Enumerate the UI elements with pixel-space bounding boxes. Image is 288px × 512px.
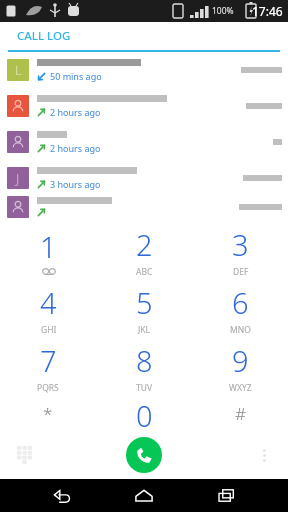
staticText: L [15,61,22,79]
staticText: 2 [136,225,153,264]
staticText: 0 [136,396,153,431]
staticText: 3 hours ago [50,178,101,190]
button[interactable]: 8 [96,338,192,396]
staticText: JKL [138,324,151,336]
staticText: 17:46 [252,3,283,19]
staticText: 2 hours ago [50,106,101,118]
staticText: 4 [40,283,57,322]
button[interactable]: 2 hours ago [0,88,288,124]
button[interactable]: Back [42,479,82,512]
button[interactable]: J [0,160,288,196]
staticText: * [43,402,53,425]
staticText: 9 [232,341,249,380]
button[interactable]: * [0,396,96,431]
staticText: CALL LOG [17,28,71,44]
staticText: 100% [212,5,234,17]
staticText: 50 mins ago [50,70,102,82]
staticText: 2 hours ago [50,142,101,154]
staticText: 7 [40,341,57,380]
button[interactable]: 2 [96,222,192,280]
staticText: TUV [136,382,153,394]
staticText: 6 [232,283,249,322]
button[interactable]: 9 [192,338,288,396]
staticText: # [235,402,246,425]
button[interactable]: 1 [0,222,96,280]
button[interactable]: CALL LOG [0,22,288,52]
staticText: MNO [230,324,251,336]
staticText: ABC [136,266,153,278]
button[interactable]: 3 [192,222,288,280]
button[interactable]: L [0,52,288,88]
staticText: 8 [136,341,153,380]
button[interactable]: 5 [96,280,192,338]
staticText: GHI [41,324,57,336]
staticText: 3 [232,225,249,264]
button[interactable]: 7 [0,338,96,396]
button[interactable]: 2 hours ago [0,124,288,160]
staticText: WXYZ [229,382,252,394]
button[interactable]: 4 [0,280,96,338]
button[interactable]: 0 [96,396,192,431]
button[interactable] [0,196,288,218]
staticText: J [16,169,20,187]
staticText: 5 [136,283,153,322]
staticText: PQRS [37,382,59,394]
button[interactable]: Call [126,437,162,473]
button[interactable]: Dialpad [8,439,40,471]
staticText: DEF [233,266,249,278]
button[interactable]: Recent apps [206,479,246,512]
button[interactable]: Home [124,479,164,512]
button[interactable]: # [192,396,288,431]
button[interactable]: 6 [192,280,288,338]
staticText: 1 [40,227,57,266]
button[interactable]: More options [250,441,278,469]
